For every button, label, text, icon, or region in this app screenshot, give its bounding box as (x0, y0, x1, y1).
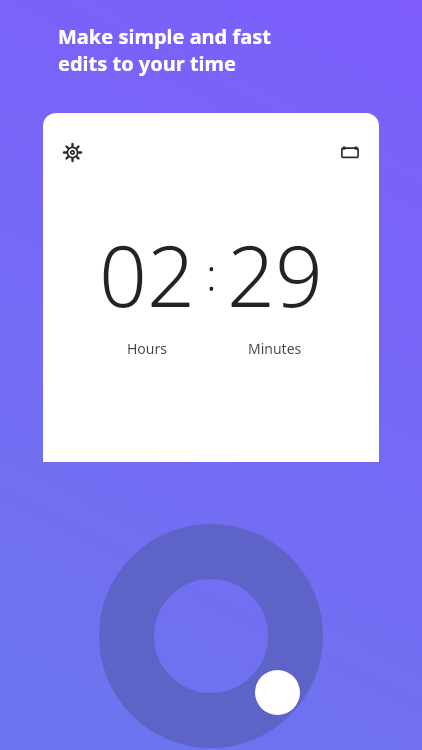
button[interactable]: Switch input mode (330, 132, 370, 172)
staticText: Make simple and fast (58, 23, 271, 50)
staticText: 02 (99, 217, 195, 331)
button[interactable]: 02 (95, 217, 199, 331)
button[interactable]: Settings (52, 132, 92, 172)
staticText: 29 (227, 217, 323, 331)
staticText: edits to your time (58, 50, 237, 77)
staticText: Hours (127, 339, 167, 358)
button[interactable]: 29 (223, 217, 327, 331)
staticText: : (206, 244, 217, 304)
staticText: Minutes (248, 339, 302, 358)
